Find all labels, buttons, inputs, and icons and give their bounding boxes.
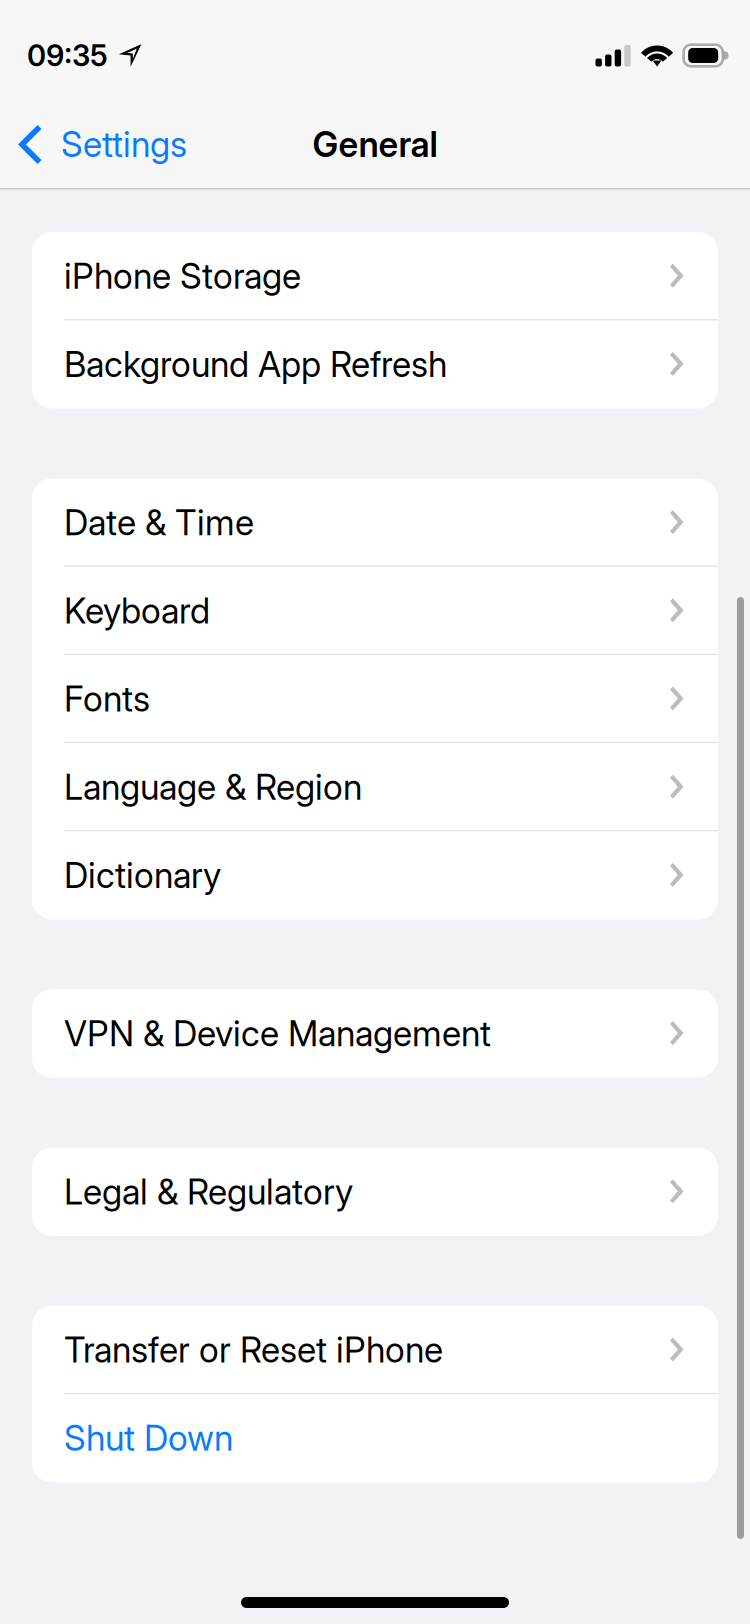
staticText: Shut Down (64, 1417, 233, 1459)
button[interactable]: Language & Region (32, 743, 718, 831)
button[interactable]: VPN & Device Management (32, 989, 718, 1078)
button[interactable]: Dictionary (32, 831, 718, 919)
button[interactable]: Settings (0, 106, 201, 182)
staticText: Date & Time (64, 502, 254, 543)
button[interactable]: Background App Refresh (32, 320, 718, 408)
staticText: iPhone Storage (64, 255, 301, 297)
button[interactable]: Date & Time (32, 478, 718, 567)
staticText: Background App Refresh (64, 343, 447, 385)
staticText: VPN & Device Management (64, 1013, 491, 1054)
button[interactable]: Legal & Regulatory (32, 1148, 718, 1236)
button[interactable]: iPhone Storage (32, 232, 718, 320)
staticText: General (312, 123, 437, 165)
button[interactable]: Keyboard (32, 567, 718, 655)
button[interactable]: Transfer or Reset iPhone (32, 1306, 718, 1394)
button[interactable]: Fonts (32, 655, 718, 743)
staticText: Fonts (64, 678, 150, 720)
staticText: Language & Region (64, 766, 362, 808)
staticText: Settings (61, 123, 187, 165)
button[interactable]: Shut Down (32, 1394, 718, 1482)
staticText: Legal & Regulatory (64, 1171, 353, 1213)
staticText: Transfer or Reset iPhone (64, 1329, 443, 1371)
staticText: Keyboard (64, 590, 210, 632)
staticText: Dictionary (64, 854, 221, 896)
staticText: 09:35 (27, 38, 108, 73)
